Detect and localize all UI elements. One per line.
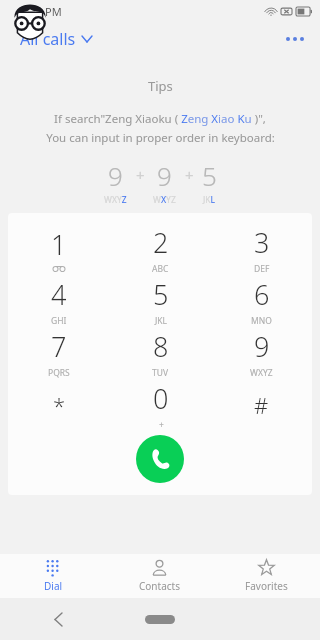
button[interactable]: Dial: [0, 554, 106, 598]
staticText: Tips: [148, 77, 173, 95]
button[interactable]: Home: [142, 612, 178, 626]
staticText: ABC: [152, 263, 169, 275]
button[interactable]: #: [211, 379, 312, 431]
button[interactable]: Call: [136, 435, 184, 483]
staticText: #: [254, 390, 269, 420]
button[interactable]: 5: [110, 275, 211, 327]
staticText: DEF: [254, 263, 270, 275]
staticText: MNO: [251, 315, 272, 327]
staticText: GHI: [51, 315, 67, 327]
button[interactable]: 7: [8, 327, 110, 379]
button[interactable]: Contacts: [106, 554, 213, 598]
staticText: All calls: [20, 28, 76, 50]
button[interactable]: 9: [211, 327, 312, 379]
staticText: WXYZ: [250, 367, 273, 379]
staticText: +: [136, 165, 145, 185]
staticText: 9: [254, 328, 270, 365]
staticText: 7: [51, 328, 67, 365]
button[interactable]: 2: [110, 223, 211, 275]
button[interactable]: *: [8, 379, 110, 431]
button[interactable]: More options: [282, 26, 308, 52]
staticText: 6: [254, 276, 270, 313]
button[interactable]: 4: [8, 275, 110, 327]
staticText: WXYZ: [153, 194, 176, 206]
staticText: 2: [153, 224, 169, 261]
staticText: PM: [45, 4, 62, 19]
staticText: 5: [202, 158, 217, 193]
staticText: 9: [157, 158, 172, 193]
staticText: 9: [108, 158, 123, 193]
staticText: 3: [254, 224, 270, 261]
staticText: TUV: [152, 367, 169, 379]
staticText: 0: [153, 380, 169, 417]
staticText: If search"Zeng Xiaoku ( Zeng Xiao Ku )",: [54, 111, 266, 127]
staticText: 5: [153, 276, 169, 313]
button[interactable]: 1: [8, 223, 110, 275]
staticText: You can input in proper order in keyboar…: [46, 130, 275, 146]
staticText: JKL: [203, 194, 216, 206]
staticText: JKL: [155, 315, 168, 327]
button[interactable]: Favorites: [213, 554, 320, 598]
button[interactable]: 8: [110, 327, 211, 379]
staticText: *: [53, 390, 66, 420]
button[interactable]: 6: [211, 275, 312, 327]
staticText: 1: [51, 226, 67, 263]
staticText: 4: [51, 276, 67, 313]
button[interactable]: 0: [110, 379, 211, 431]
staticText: 8: [153, 328, 169, 365]
staticText: Favorites: [245, 579, 288, 593]
staticText: Dial: [44, 579, 63, 593]
staticText: +: [159, 419, 164, 431]
staticText: Contacts: [139, 579, 180, 593]
button[interactable]: 3: [211, 223, 312, 275]
staticText: WXYZ: [104, 194, 127, 206]
button[interactable]: All calls: [18, 24, 94, 54]
button[interactable]: Back: [46, 607, 70, 631]
staticText: +: [185, 165, 194, 185]
staticText: PQRS: [48, 367, 70, 379]
